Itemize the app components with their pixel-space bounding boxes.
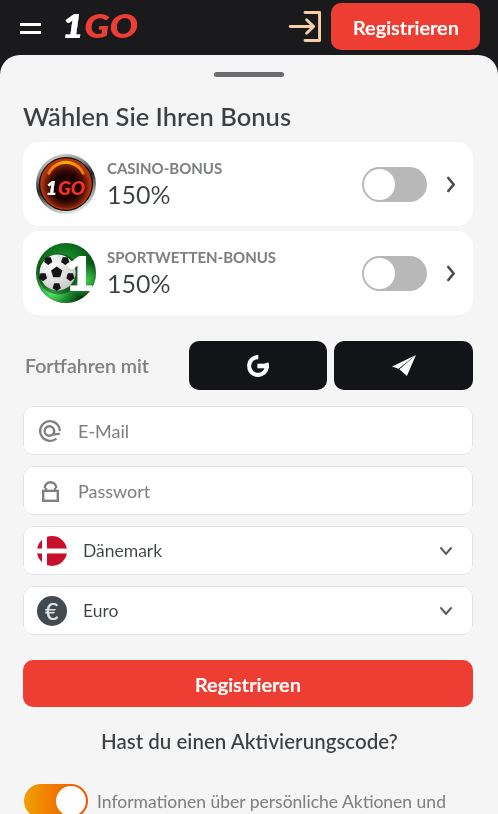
button[interactable]: Anmelden xyxy=(284,5,326,47)
staticText: GO xyxy=(84,5,138,44)
staticText: Fortfahren mit xyxy=(25,354,149,377)
button[interactable]: 1 xyxy=(23,142,473,226)
button[interactable]: Bonus auswählen xyxy=(362,256,427,291)
staticText: CASINO-BONUS xyxy=(107,159,223,177)
button[interactable]: Mit Telegram fortfahren xyxy=(334,341,473,390)
staticText: Euro xyxy=(83,600,119,621)
staticText: Registrieren xyxy=(353,15,459,39)
staticText: 1 xyxy=(62,5,84,44)
staticText: 150% xyxy=(107,179,171,209)
button[interactable]: Registrieren xyxy=(23,660,473,707)
staticText: SPORTWETTEN-BONUS xyxy=(107,248,277,266)
button[interactable]: Passwort xyxy=(23,466,473,515)
button[interactable]: Benachrichtigungen aktivieren xyxy=(24,784,88,814)
staticText: € xyxy=(45,597,59,625)
button[interactable]: Registrieren xyxy=(331,3,480,50)
staticText: 150% xyxy=(107,268,171,298)
button[interactable]: 1 xyxy=(23,231,473,315)
staticText: E-Mail xyxy=(78,420,130,442)
staticText: 1 xyxy=(65,244,95,302)
staticText: Informationen über persönliche Aktionen … xyxy=(97,791,446,812)
staticText: Wählen Sie Ihren Bonus xyxy=(23,101,292,132)
button[interactable]: E-Mail xyxy=(23,406,473,455)
staticText: Hast du einen Aktivierungscode? xyxy=(101,729,398,754)
button[interactable]: Mit Google fortfahren xyxy=(189,341,327,390)
button[interactable]: Bonus auswählen xyxy=(362,167,427,202)
staticText: Dänemark xyxy=(83,540,163,561)
staticText: GO xyxy=(58,176,86,199)
button[interactable]: Menü xyxy=(14,12,46,44)
staticText: Registrieren xyxy=(195,672,301,696)
button[interactable]: € xyxy=(23,586,473,635)
button[interactable]: Dänemark xyxy=(23,526,473,575)
button[interactable]: Hast du einen Aktivierungscode? xyxy=(101,729,398,754)
staticText: 1 xyxy=(46,176,58,199)
staticText: Passwort xyxy=(78,480,151,502)
